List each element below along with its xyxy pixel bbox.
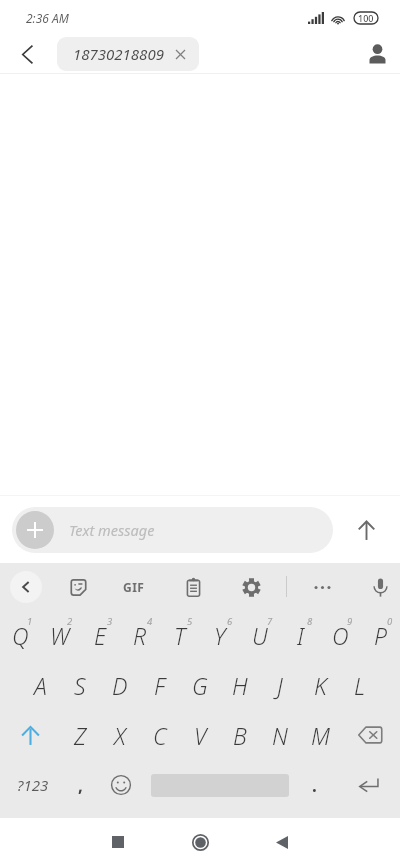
- button[interactable]: V: [180, 710, 220, 760]
- button[interactable]: B: [220, 710, 260, 760]
- button[interactable]: ,: [66, 760, 94, 810]
- button[interactable]: Shift: [0, 710, 60, 760]
- staticText: O: [332, 620, 349, 651]
- button[interactable]: H: [220, 660, 260, 710]
- button[interactable]: X: [100, 710, 140, 760]
- button[interactable]: P: [360, 610, 400, 660]
- button[interactable]: Q: [0, 610, 40, 660]
- button[interactable]: S: [60, 660, 100, 710]
- button[interactable]: ?123: [0, 760, 66, 810]
- staticText: 3: [107, 615, 113, 628]
- button[interactable]: Keyboard settings: [232, 568, 270, 606]
- button[interactable]: K: [300, 660, 340, 710]
- button[interactable]: D: [100, 660, 140, 710]
- staticText: L: [354, 670, 366, 701]
- staticText: 2:36 AM: [26, 10, 69, 26]
- button[interactable]: T: [160, 610, 200, 660]
- button[interactable]: Backspace: [340, 710, 400, 760]
- staticText: 0: [387, 615, 393, 628]
- staticText: Y: [214, 620, 226, 651]
- button[interactable]: Home: [172, 818, 228, 866]
- button[interactable]: E: [80, 610, 120, 660]
- staticText: S: [74, 670, 86, 701]
- staticText: G: [192, 670, 208, 701]
- button[interactable]: Voice input: [361, 568, 399, 606]
- button[interactable]: 18730218809: [57, 37, 199, 71]
- button[interactable]: A: [20, 660, 60, 710]
- staticText: .: [312, 774, 317, 797]
- staticText: 7: [267, 615, 273, 628]
- button[interactable]: Sticker: [59, 568, 97, 606]
- button[interactable]: Z: [60, 710, 100, 760]
- staticText: 2: [67, 615, 73, 628]
- staticText: W: [50, 620, 70, 651]
- staticText: P: [374, 620, 387, 651]
- staticText: K: [314, 670, 327, 701]
- staticText: B: [233, 720, 247, 751]
- button[interactable]: Recent apps: [90, 818, 146, 866]
- button[interactable]: Close keyboard: [10, 571, 42, 603]
- button[interactable]: Space: [147, 760, 292, 810]
- staticText: X: [114, 720, 126, 751]
- button[interactable]: M: [300, 710, 340, 760]
- button[interactable]: F: [140, 660, 180, 710]
- button[interactable]: Text message: [12, 507, 333, 553]
- button[interactable]: C: [140, 710, 180, 760]
- button[interactable]: W: [40, 610, 80, 660]
- staticText: V: [194, 720, 207, 751]
- button[interactable]: Emoji: [94, 760, 147, 810]
- button[interactable]: GIF: [114, 567, 154, 607]
- button[interactable]: Back: [6, 35, 48, 73]
- staticText: C: [153, 720, 167, 751]
- button[interactable]: Send: [333, 504, 400, 556]
- button[interactable]: Enter: [337, 760, 400, 810]
- staticText: ?123: [17, 775, 49, 795]
- staticText: ,: [78, 774, 83, 797]
- staticText: N: [272, 720, 288, 751]
- staticText: 8: [307, 615, 313, 628]
- staticText: U: [252, 620, 268, 651]
- staticText: I: [297, 620, 304, 651]
- staticText: T: [174, 620, 186, 651]
- button[interactable]: Back: [254, 818, 310, 866]
- button[interactable]: G: [180, 660, 220, 710]
- staticText: M: [311, 720, 330, 751]
- staticText: R: [133, 620, 147, 651]
- staticText: F: [154, 670, 166, 701]
- button[interactable]: Y: [200, 610, 240, 660]
- staticText: 6: [227, 615, 233, 628]
- staticText: 18730218809: [73, 44, 164, 64]
- button[interactable]: Contact details: [357, 35, 397, 73]
- staticText: Z: [74, 720, 87, 751]
- button[interactable]: J: [260, 660, 300, 710]
- button[interactable]: O: [320, 610, 360, 660]
- staticText: 5: [187, 615, 193, 628]
- staticText: 9: [347, 615, 353, 628]
- staticText: H: [232, 670, 248, 701]
- button[interactable]: R: [120, 610, 160, 660]
- button[interactable]: .: [292, 760, 337, 810]
- staticText: 100: [358, 12, 374, 24]
- button[interactable]: Clipboard: [174, 568, 212, 606]
- staticText: Q: [12, 620, 29, 651]
- button[interactable]: I: [280, 610, 320, 660]
- staticText: 1: [27, 615, 33, 628]
- staticText: D: [112, 670, 128, 701]
- staticText: J: [277, 670, 283, 701]
- button[interactable]: N: [260, 710, 300, 760]
- staticText: Text message: [69, 520, 155, 540]
- staticText: A: [34, 670, 47, 701]
- staticText: E: [94, 620, 107, 651]
- button[interactable]: L: [340, 660, 380, 710]
- staticText: 4: [147, 615, 153, 628]
- staticText: GIF: [123, 579, 145, 595]
- button[interactable]: More options: [303, 568, 341, 606]
- button[interactable]: U: [240, 610, 280, 660]
